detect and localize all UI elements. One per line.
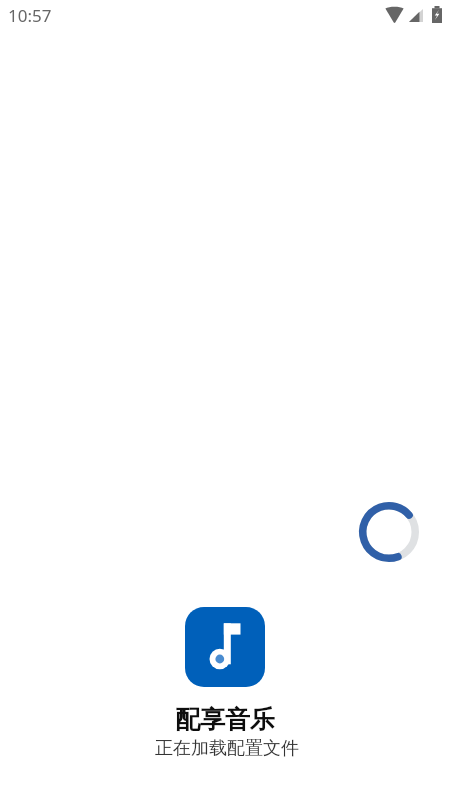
staticText: 配享音乐 xyxy=(175,704,275,735)
other: Wi-Fi xyxy=(385,7,404,23)
button[interactable]: 配享音乐 logo xyxy=(185,607,265,687)
other: Cellular signal xyxy=(409,9,423,22)
staticText: 10:57 xyxy=(8,4,52,27)
staticText: 正在加载配置文件 xyxy=(155,737,299,760)
button[interactable]: 配享音乐 logo xyxy=(0,607,450,760)
other: Loading xyxy=(359,502,419,562)
other: Battery charging xyxy=(432,6,442,23)
